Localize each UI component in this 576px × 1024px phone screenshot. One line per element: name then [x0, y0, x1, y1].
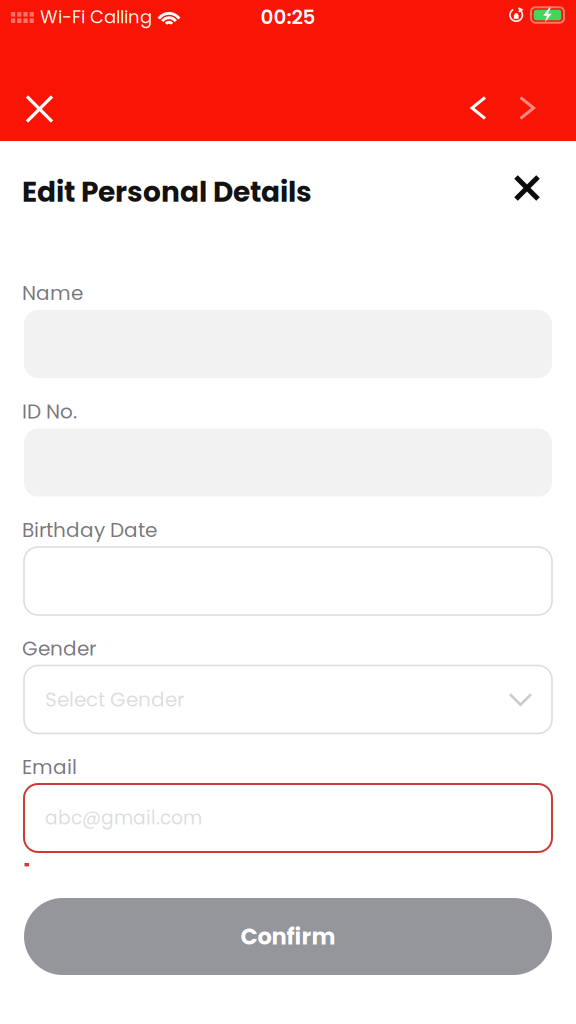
- staticText: Name: [22, 279, 83, 307]
- staticText: Wi-Fi Calling: [40, 4, 152, 30]
- button[interactable]: Close: [11, 81, 67, 137]
- staticText: ID No.: [22, 397, 77, 425]
- button[interactable]: Forward: [501, 80, 553, 136]
- button[interactable]: Dismiss: [503, 164, 551, 212]
- staticText: 00:25: [260, 3, 315, 31]
- button[interactable]: Back: [452, 80, 504, 136]
- staticText: Select Gender: [45, 685, 184, 713]
- button[interactable]: Select Gender: [24, 665, 552, 733]
- staticText: Birthday Date: [22, 516, 157, 544]
- staticText: Confirm: [240, 921, 335, 952]
- staticText: Email: [22, 753, 77, 781]
- button[interactable]: Birthday Date: [24, 547, 552, 615]
- button[interactable]: Confirm: [24, 898, 552, 975]
- staticText: abc@gmail.com: [45, 805, 202, 831]
- staticText: Gender: [22, 634, 96, 662]
- staticText: Edit Personal Details: [22, 172, 312, 212]
